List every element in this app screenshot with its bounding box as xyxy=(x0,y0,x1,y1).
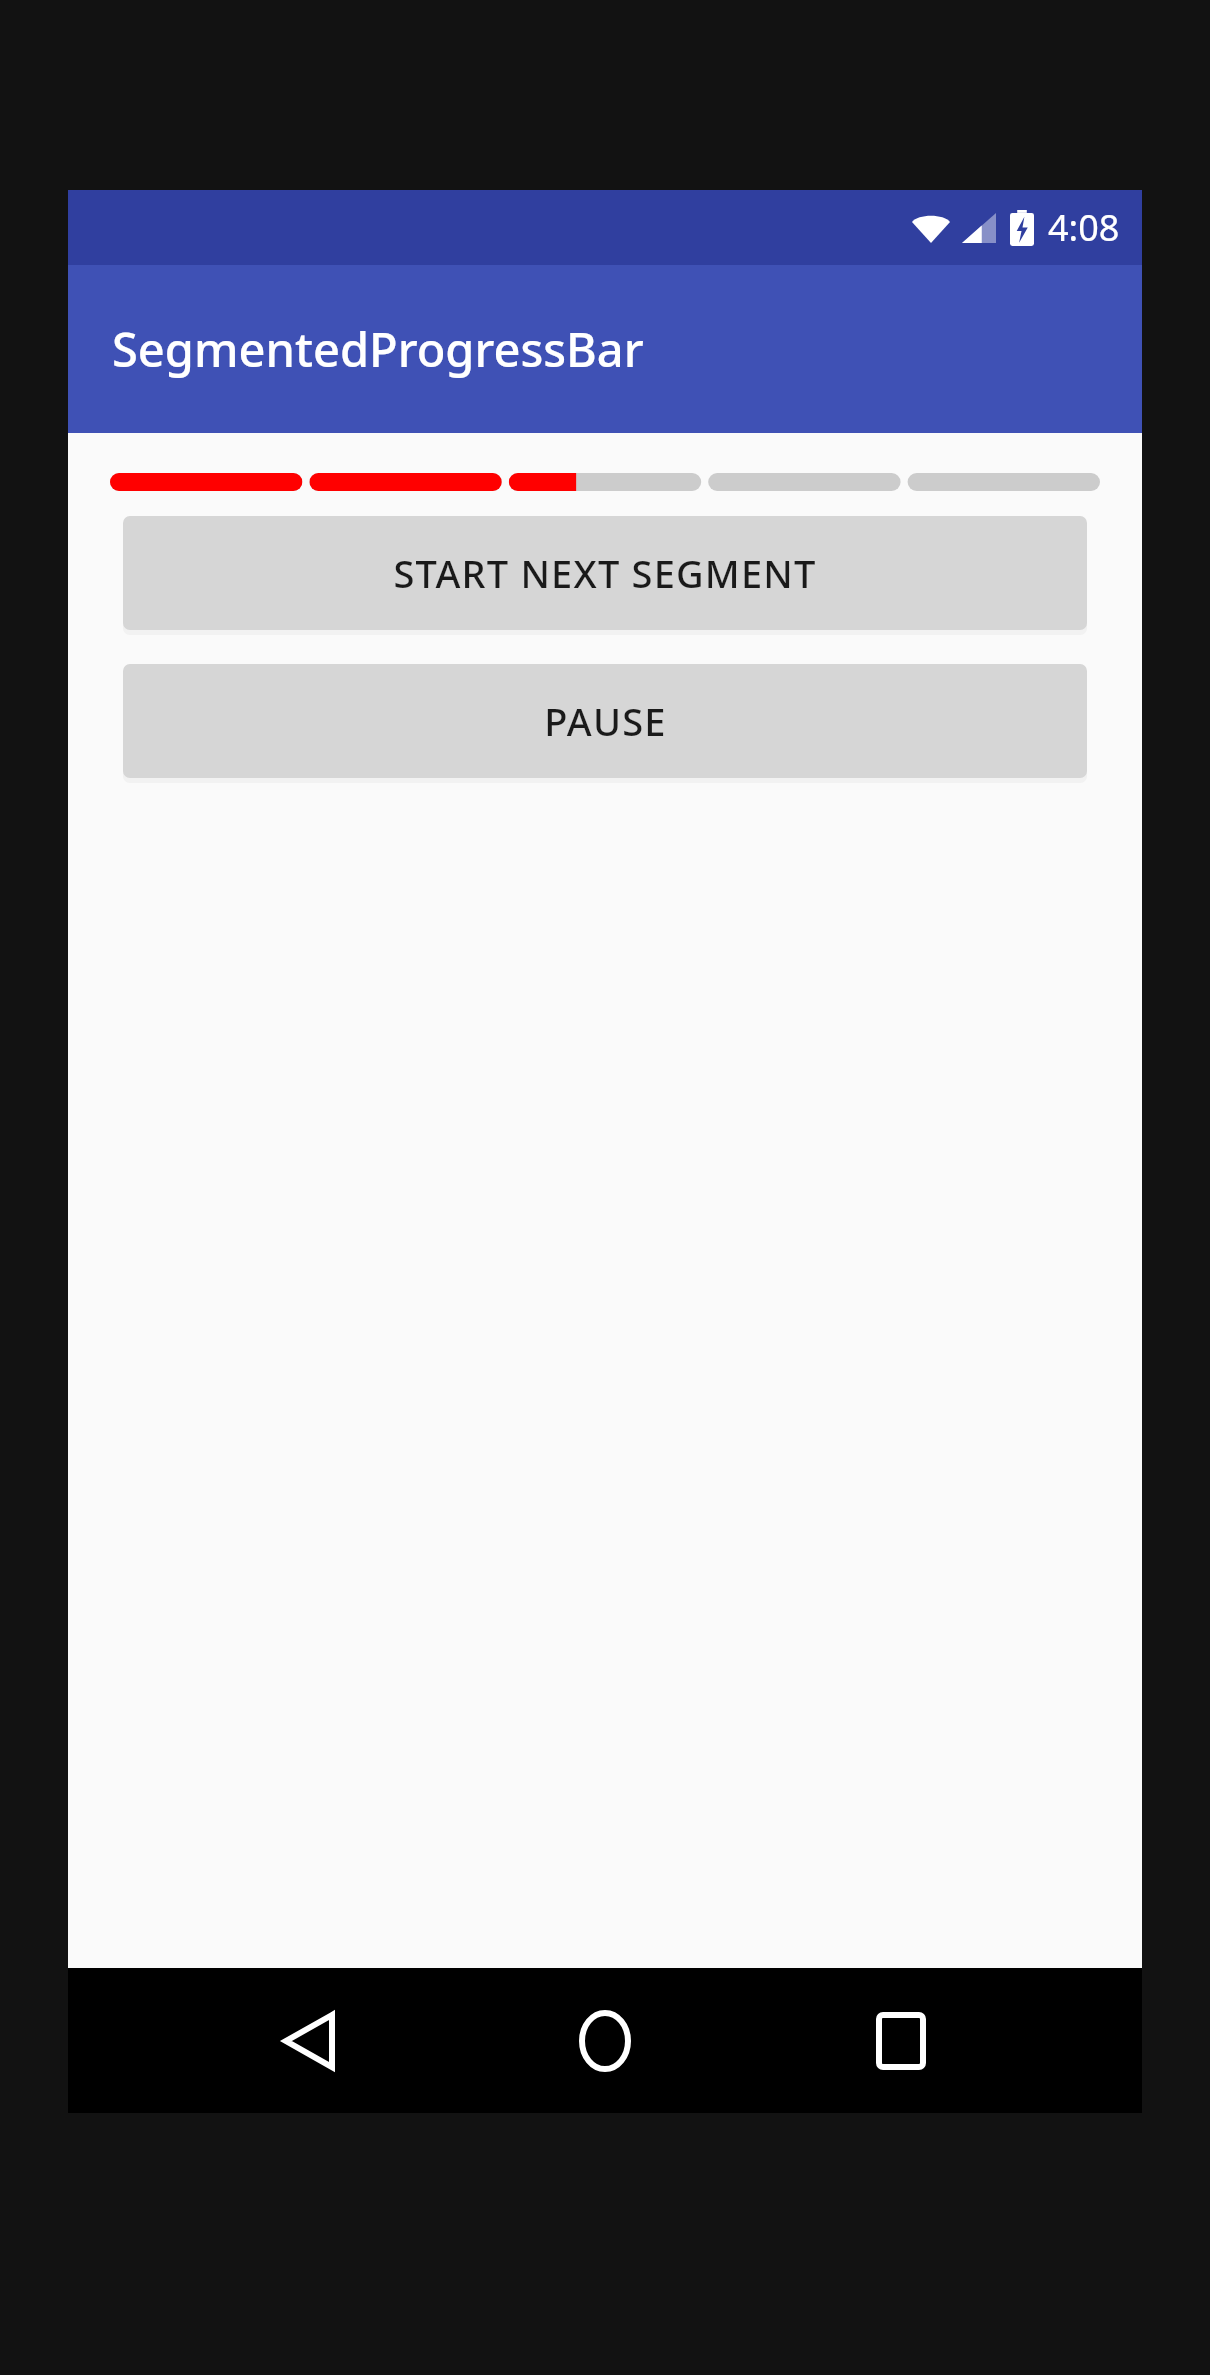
staticText: START NEXT SEGMENT xyxy=(393,547,817,599)
button[interactable]: Back xyxy=(254,1986,364,2096)
staticText: SegmentedProgressBar xyxy=(112,317,644,381)
button[interactable]: PAUSE xyxy=(123,664,1087,778)
staticText: 4:08 xyxy=(1048,203,1120,252)
staticText: PAUSE xyxy=(544,695,667,747)
button[interactable]: Home xyxy=(550,1986,660,2096)
button[interactable]: Recent apps xyxy=(846,1986,956,2096)
button[interactable]: START NEXT SEGMENT xyxy=(123,516,1087,630)
